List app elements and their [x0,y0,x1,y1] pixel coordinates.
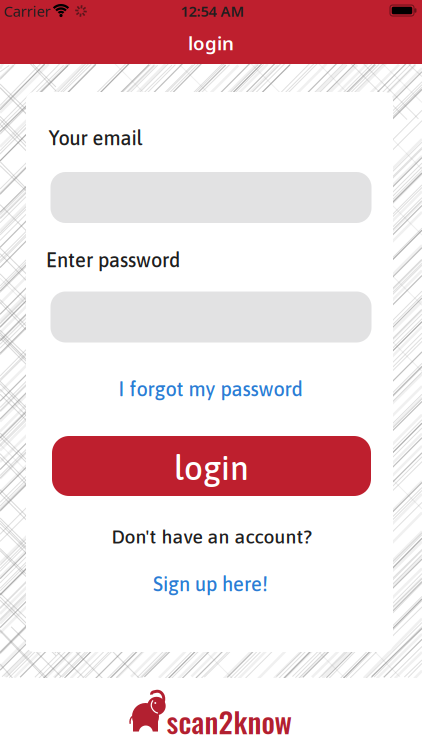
button[interactable]: Enter password [50,291,371,342]
staticText: Your email [48,126,142,149]
staticText: 12:54 AM [180,1,244,21]
staticText: login [188,31,234,55]
button[interactable]: I forgot my password [118,377,302,400]
button[interactable]: login [52,436,371,496]
staticText: Sign up here! [153,572,268,595]
staticText: Enter password [46,248,180,271]
staticText: Carrier [3,1,50,21]
staticText: I forgot my password [118,377,302,400]
staticText: Don't have an account? [111,525,312,548]
button[interactable]: Your email [50,172,371,223]
staticText: scan2know [166,699,291,743]
staticText: login [174,449,249,487]
button[interactable]: Sign up here! [153,572,268,595]
